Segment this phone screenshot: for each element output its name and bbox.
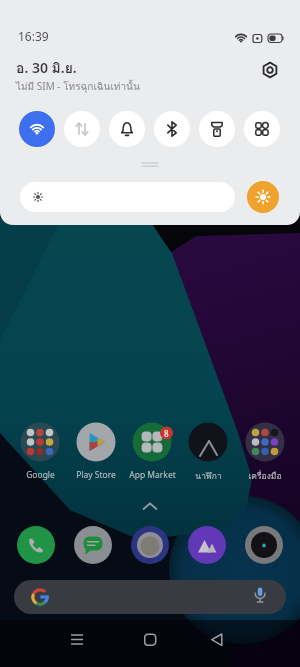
button[interactable] [135,623,165,659]
staticText: 8 [164,428,169,439]
button[interactable]: Google [12,422,68,484]
staticText: Google [26,469,55,481]
button[interactable] [245,526,283,564]
button[interactable] [17,526,55,564]
button[interactable] [247,181,279,213]
button[interactable]: นาฬิกา [180,422,236,484]
button[interactable] [20,182,235,212]
button[interactable]: App Market [124,422,180,484]
staticText: อ. 30 มิ.ย. [16,57,77,79]
button[interactable] [19,111,55,147]
button[interactable] [154,111,190,147]
staticText: 16:39 [18,28,49,44]
button[interactable] [188,526,226,564]
button[interactable] [131,526,169,564]
staticText: App Market [129,469,176,481]
button[interactable] [202,623,232,659]
button[interactable] [260,60,280,80]
button[interactable] [244,111,280,147]
button[interactable] [64,111,100,147]
staticText: ไม่มี SIM - โทรฉุกเฉินเท่านั้น [16,79,140,95]
staticText: Play Store [76,469,116,481]
button[interactable]: เครื่องมือ [237,422,293,484]
button[interactable] [14,580,286,614]
button[interactable] [62,623,92,659]
button[interactable] [199,111,235,147]
staticText: นาฬิกา [195,469,222,483]
button[interactable]: Play Store [68,422,124,484]
button[interactable] [109,111,145,147]
staticText: เครื่องมือ [248,469,282,483]
button[interactable] [74,526,112,564]
